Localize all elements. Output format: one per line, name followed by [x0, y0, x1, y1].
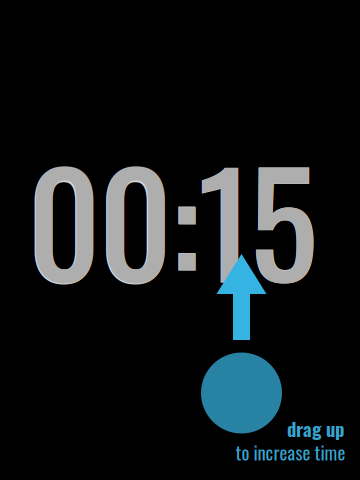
button[interactable]: Drag up to increase time	[201, 352, 282, 433]
staticText: to increase time	[235, 438, 345, 466]
staticText: 00:15	[27, 114, 317, 323]
staticText: drag up	[287, 415, 344, 442]
staticText: 00:15	[26, 114, 318, 323]
